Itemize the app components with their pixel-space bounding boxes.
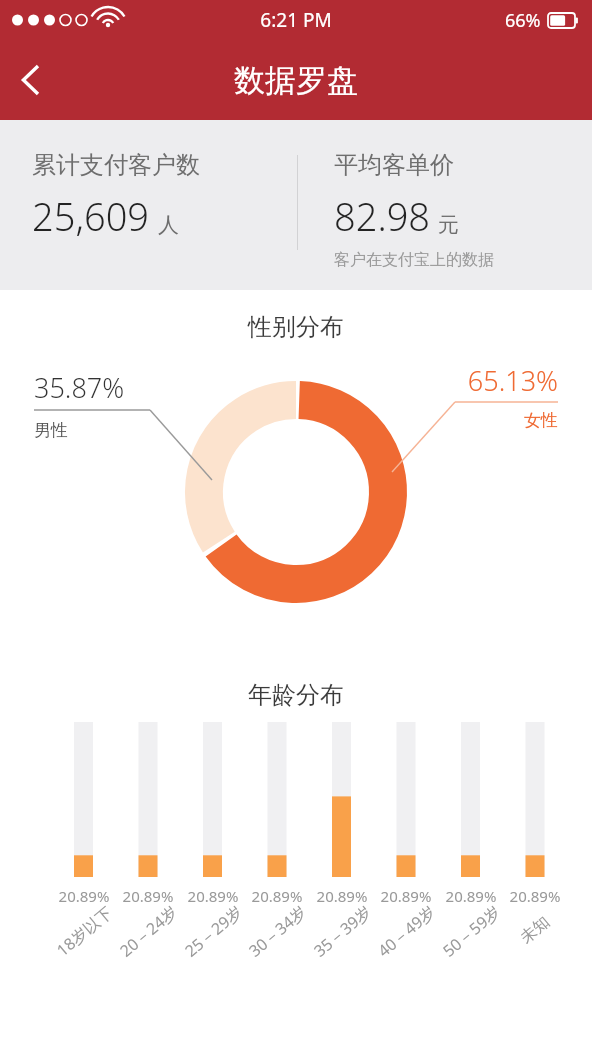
staticText: 累计支付客户数	[32, 150, 200, 180]
staticText: 年龄分布	[0, 680, 592, 710]
staticText: 20.89%	[108, 886, 188, 906]
staticText: 30－34岁	[244, 900, 311, 962]
staticText: 6:21 PM	[260, 7, 332, 33]
staticText: 性别分布	[0, 312, 592, 342]
staticText: 客户在支付宝上的数据	[334, 250, 494, 270]
staticText: 66%	[505, 8, 541, 33]
button[interactable]: Back	[0, 49, 62, 111]
staticText: 元	[438, 212, 459, 238]
staticText: 40－49岁	[373, 900, 440, 962]
staticText: 65.13%	[392, 362, 558, 399]
staticText: 20.89%	[431, 886, 511, 906]
staticText: 20－24岁	[115, 900, 182, 962]
staticText: 数据罗盘	[234, 61, 358, 100]
staticText: 20.89%	[366, 886, 446, 906]
staticText: 人	[158, 212, 179, 238]
staticText: 20.89%	[495, 886, 575, 906]
staticText: 20.89%	[302, 886, 382, 906]
staticText: 35－39岁	[309, 900, 376, 962]
staticText: 20.89%	[237, 886, 317, 906]
staticText: 50－59岁	[438, 900, 505, 962]
staticText: 20.89%	[44, 886, 124, 906]
staticText: 35.87%	[34, 369, 125, 406]
staticText: 男性	[34, 420, 68, 441]
staticText: 平均客单价	[334, 150, 454, 180]
staticText: 25－29岁	[180, 900, 247, 962]
staticText: 18岁以下	[52, 901, 117, 961]
staticText: 20.89%	[173, 886, 253, 906]
staticText: 25,609	[32, 190, 150, 242]
staticText: 未知	[516, 912, 554, 948]
staticText: 女性	[392, 410, 558, 431]
staticText: 82.98	[334, 190, 431, 242]
